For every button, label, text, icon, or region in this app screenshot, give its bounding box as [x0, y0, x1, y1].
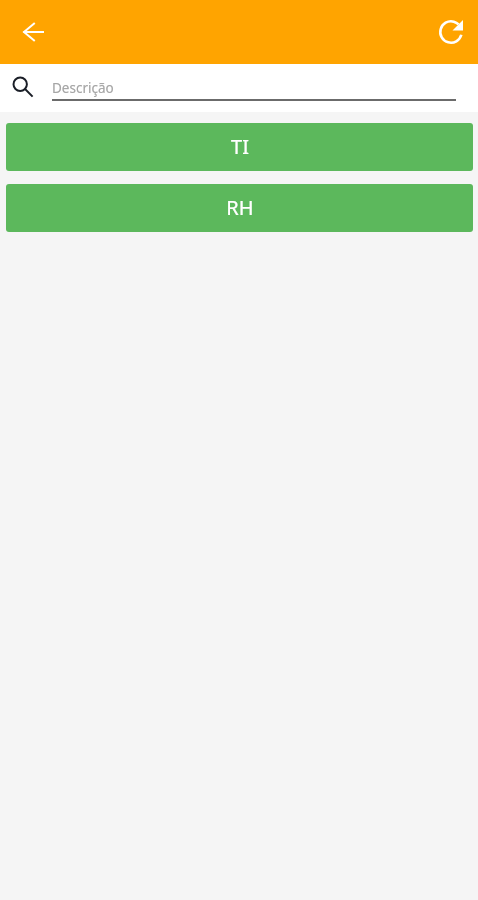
staticText: RH [226, 194, 254, 221]
button[interactable]: Back [12, 11, 54, 53]
button[interactable]: Refresh [430, 11, 472, 53]
staticText: TI [231, 133, 249, 160]
button[interactable]: Search [11, 75, 33, 97]
staticText: Descrição [52, 79, 114, 97]
button[interactable]: RH [6, 184, 473, 232]
button[interactable]: Descrição [52, 72, 456, 101]
button[interactable]: TI [6, 123, 473, 171]
